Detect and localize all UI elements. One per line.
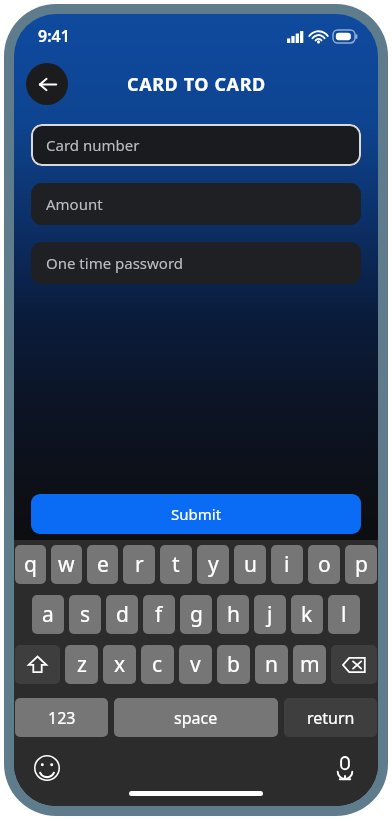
staticText: k <box>301 600 313 629</box>
button[interactable]: b <box>217 645 250 684</box>
button[interactable]: w <box>51 545 82 584</box>
staticText: e <box>97 550 109 579</box>
button[interactable]: Emoji <box>30 751 64 785</box>
staticText: r <box>135 550 144 579</box>
staticText: o <box>318 550 331 579</box>
button[interactable]: Card number <box>31 124 361 166</box>
staticText: g <box>190 600 203 629</box>
button[interactable]: Shift <box>15 645 60 684</box>
staticText: z <box>77 650 87 679</box>
button[interactable]: Voice input <box>328 751 362 785</box>
staticText: 123 <box>48 707 76 729</box>
button[interactable]: d <box>106 595 138 634</box>
button[interactable]: o <box>308 545 340 584</box>
staticText: u <box>244 550 257 579</box>
button[interactable]: Submit <box>31 494 361 534</box>
staticText: n <box>265 650 278 679</box>
button[interactable]: y <box>197 545 229 584</box>
staticText: i <box>284 550 290 579</box>
staticText: Amount <box>46 194 103 214</box>
staticText: y <box>208 550 219 579</box>
staticText: return <box>307 707 355 729</box>
staticText: q <box>24 550 37 579</box>
button[interactable]: e <box>87 545 118 584</box>
button[interactable]: return <box>284 698 377 737</box>
staticText: l <box>341 600 347 629</box>
staticText: CARD TO CARD <box>127 72 266 97</box>
button[interactable]: u <box>234 545 266 584</box>
button[interactable]: a <box>32 595 64 634</box>
staticText: s <box>80 600 91 629</box>
button[interactable]: g <box>180 595 212 634</box>
staticText: b <box>227 650 240 679</box>
button[interactable]: k <box>291 595 323 634</box>
button[interactable]: f <box>143 595 175 634</box>
staticText: h <box>227 600 240 629</box>
button[interactable]: r <box>123 545 155 584</box>
button[interactable]: Backspace <box>331 645 377 684</box>
staticText: v <box>190 650 201 679</box>
staticText: t <box>172 550 180 579</box>
button[interactable]: p <box>345 545 377 584</box>
button[interactable]: h <box>217 595 249 634</box>
button[interactable]: x <box>103 645 136 684</box>
button[interactable]: i <box>271 545 303 584</box>
staticText: One time password <box>46 253 184 273</box>
button[interactable]: Amount <box>31 183 361 225</box>
staticText: p <box>355 550 368 579</box>
button[interactable]: v <box>179 645 212 684</box>
staticText: j <box>267 600 273 629</box>
button[interactable]: n <box>255 645 288 684</box>
staticText: 9:41 <box>38 25 70 47</box>
button[interactable]: l <box>328 595 360 634</box>
button[interactable]: c <box>141 645 174 684</box>
staticText: space <box>174 707 218 729</box>
button[interactable]: z <box>65 645 98 684</box>
staticText: m <box>300 650 320 679</box>
button[interactable]: space <box>114 698 278 737</box>
button[interactable]: j <box>254 595 286 634</box>
button[interactable]: m <box>293 645 326 684</box>
button[interactable]: 123 <box>15 698 108 737</box>
button[interactable]: q <box>15 545 46 584</box>
staticText: x <box>114 650 126 679</box>
button[interactable]: One time password <box>31 242 361 284</box>
button[interactable]: Back <box>26 63 68 105</box>
staticText: Card number <box>46 135 140 155</box>
staticText: Submit <box>171 504 222 524</box>
staticText: f <box>155 600 163 629</box>
staticText: c <box>152 650 163 679</box>
staticText: a <box>42 600 54 629</box>
staticText: d <box>116 600 129 629</box>
button[interactable]: t <box>160 545 192 584</box>
staticText: w <box>58 550 75 579</box>
button[interactable]: s <box>69 595 101 634</box>
